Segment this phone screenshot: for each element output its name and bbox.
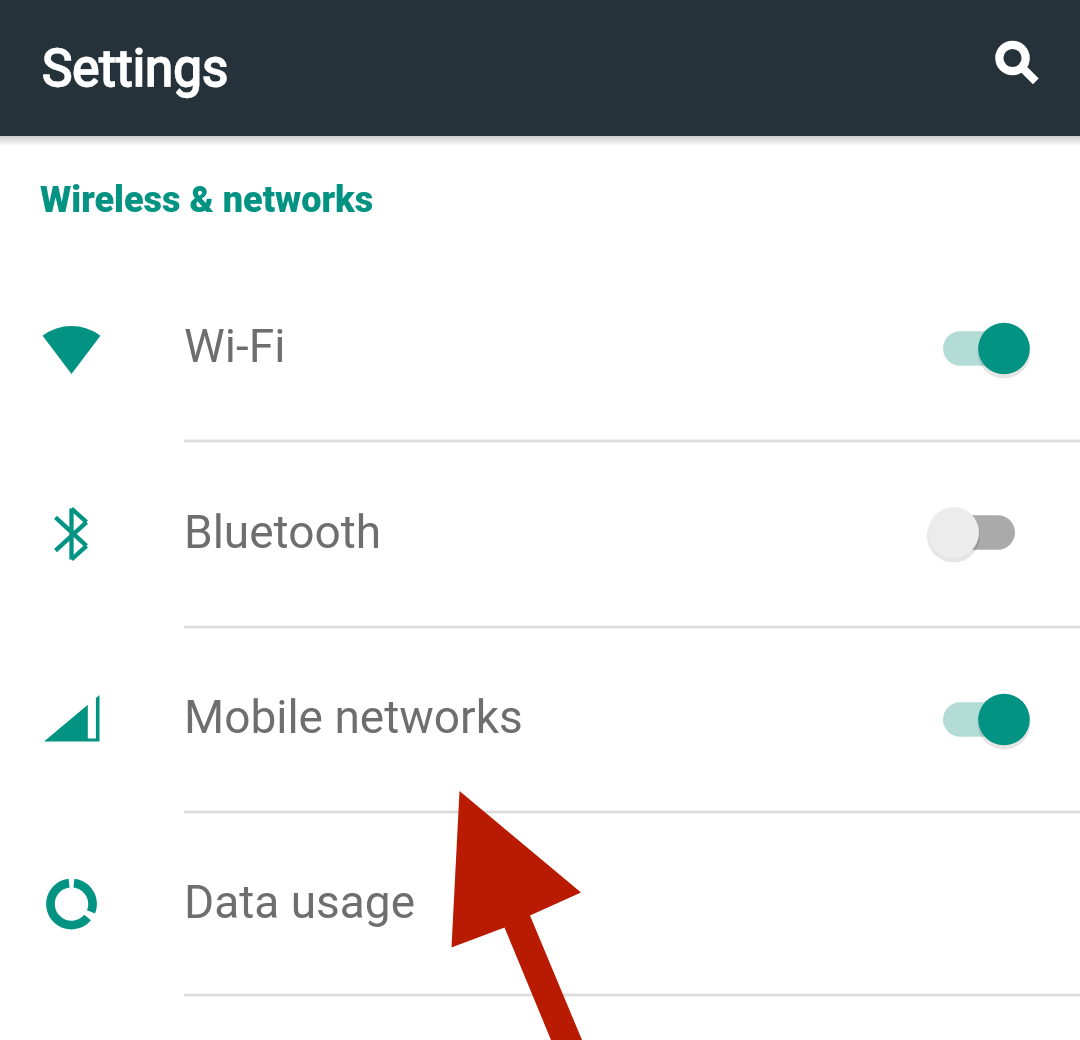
button[interactable]: Wi-Fi switch [930,308,1054,388]
staticText: Mobile networks [184,690,523,744]
staticText: Bluetooth [184,505,382,559]
button[interactable]: Mobile networks [0,627,1080,812]
staticText: Data usage [184,875,416,929]
staticText: Settings [42,39,229,99]
staticText: Wireless & networks [40,179,374,221]
button[interactable]: Mobile networks switch [930,679,1054,759]
button[interactable]: Bluetooth [0,441,1080,627]
button[interactable]: Wi-Fi [0,255,1080,441]
staticText: Wi-Fi [184,319,286,373]
button[interactable]: Bluetooth switch [916,494,1040,574]
button[interactable]: Search [967,13,1057,103]
button[interactable]: Data usage [0,812,1080,995]
